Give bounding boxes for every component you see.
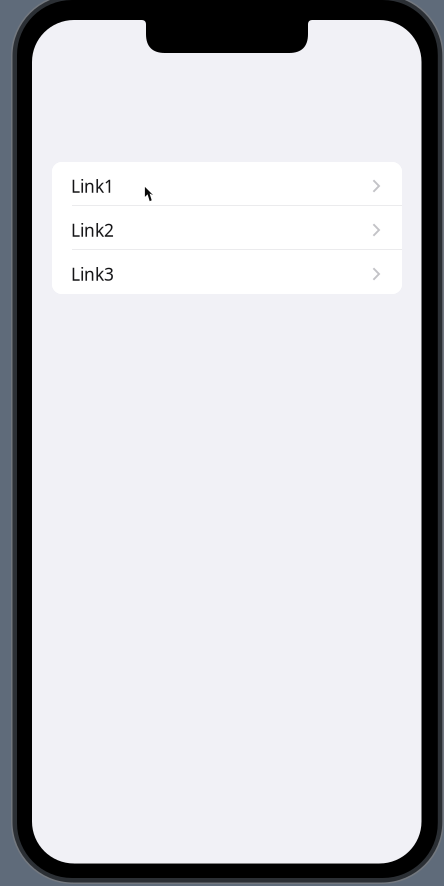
- staticText: Link1: [71, 174, 114, 197]
- staticText: Link2: [71, 218, 114, 241]
- button[interactable]: Link2: [52, 206, 402, 250]
- button[interactable]: Link3: [52, 250, 402, 294]
- button[interactable]: Link1: [52, 162, 402, 206]
- staticText: Link3: [71, 262, 114, 285]
